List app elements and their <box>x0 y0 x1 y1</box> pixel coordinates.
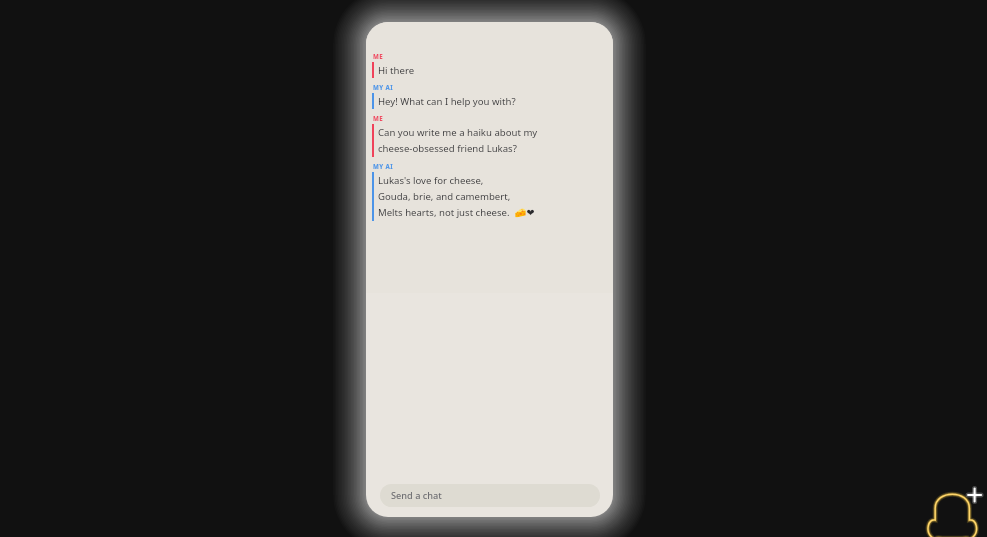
staticText: Can you write me a haiku about my <box>378 126 538 139</box>
staticText: Gouda, brie, and camembert, <box>378 190 511 203</box>
staticText: MY AI <box>373 83 394 91</box>
staticText: ME <box>373 52 384 60</box>
staticText: Hi there <box>378 64 415 77</box>
staticText: Lukas's love for cheese, <box>378 174 484 187</box>
staticText: Send a chat <box>391 489 442 502</box>
staticText: Melts hearts, not just cheese. 🧀❤️ <box>378 206 535 219</box>
staticText: cheese-obsessed friend Lukas? <box>378 142 517 155</box>
staticText: ME <box>373 114 384 122</box>
staticText: Hey! What can I help you with? <box>378 95 516 108</box>
button[interactable]: Snapchat <box>925 477 987 537</box>
button[interactable]: Send a chat <box>380 484 600 507</box>
staticText: MY AI <box>373 162 394 170</box>
